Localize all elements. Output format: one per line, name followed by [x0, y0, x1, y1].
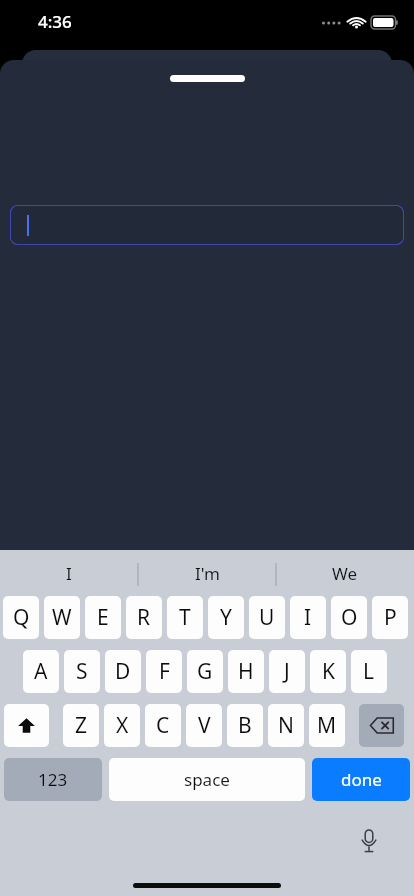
button[interactable]: P	[372, 596, 408, 639]
staticText: O	[341, 603, 358, 632]
button[interactable]: K	[310, 650, 346, 693]
button[interactable]: done	[312, 758, 410, 801]
button[interactable]: L	[351, 650, 387, 693]
button[interactable]: Backspace	[359, 704, 404, 747]
staticText: 4:36	[38, 10, 72, 33]
staticText: T	[179, 603, 191, 632]
button[interactable]: U	[249, 596, 285, 639]
staticText: M	[317, 711, 337, 740]
button[interactable]: I	[0, 550, 138, 596]
button[interactable]: C	[145, 704, 181, 747]
staticText: U	[259, 603, 275, 632]
staticText: L	[363, 657, 375, 686]
button[interactable]: D	[105, 650, 141, 693]
button[interactable]: F	[146, 650, 182, 693]
staticText: J	[284, 657, 290, 686]
staticText: G	[197, 657, 213, 686]
staticText: Q	[13, 603, 30, 632]
button[interactable]: Q	[3, 596, 39, 639]
button[interactable]: G	[187, 650, 223, 693]
staticText: V	[198, 711, 211, 740]
button[interactable]: M	[309, 704, 345, 747]
staticText: 123	[38, 768, 68, 791]
button[interactable]: T	[167, 596, 203, 639]
button[interactable]: S	[64, 650, 100, 693]
staticText: We	[332, 562, 358, 585]
button[interactable]: A	[23, 650, 59, 693]
button[interactable]: Y	[208, 596, 244, 639]
staticText: X	[116, 711, 129, 740]
staticText: space	[184, 768, 230, 791]
button[interactable]	[170, 75, 245, 82]
button[interactable]: N	[268, 704, 304, 747]
staticText: E	[97, 603, 109, 632]
button[interactable]: Dictation	[352, 824, 386, 858]
button[interactable]: O	[331, 596, 367, 639]
button[interactable]: H	[228, 650, 264, 693]
staticText: Z	[75, 711, 88, 740]
button[interactable]: X	[104, 704, 140, 747]
button[interactable]: V	[186, 704, 222, 747]
staticText: I	[66, 562, 72, 585]
button[interactable]: R	[126, 596, 162, 639]
staticText: K	[322, 657, 335, 686]
button[interactable]: Z	[63, 704, 99, 747]
staticText: Y	[220, 603, 232, 632]
staticText: W	[52, 603, 72, 632]
button[interactable]	[10, 205, 404, 245]
staticText: I	[304, 603, 312, 632]
staticText: R	[137, 603, 151, 632]
button[interactable]: I'm	[138, 550, 276, 596]
staticText: I'm	[195, 562, 220, 585]
staticText: N	[278, 711, 294, 740]
staticText: S	[76, 657, 88, 686]
button[interactable]: I	[290, 596, 326, 639]
staticText: F	[159, 657, 170, 686]
staticText: C	[156, 711, 170, 740]
button[interactable]: B	[227, 704, 263, 747]
staticText: A	[34, 657, 48, 686]
button[interactable]: W	[44, 596, 80, 639]
staticText: done	[341, 768, 382, 791]
staticText: P	[384, 603, 397, 632]
button[interactable]: E	[85, 596, 121, 639]
button[interactable]: 123	[4, 758, 102, 801]
button[interactable]: J	[269, 650, 305, 693]
button[interactable]: We	[276, 550, 414, 596]
staticText: H	[238, 657, 254, 686]
button[interactable]: Shift	[4, 704, 49, 747]
button[interactable]: space	[109, 758, 305, 801]
staticText: D	[115, 657, 131, 686]
staticText: B	[238, 711, 252, 740]
